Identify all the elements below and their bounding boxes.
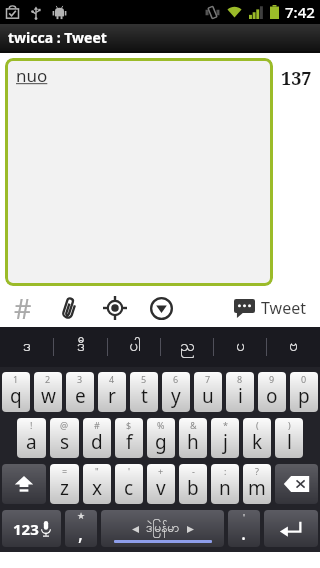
button[interactable]: 6 [162,372,190,412]
button[interactable]: $ [115,418,143,458]
button[interactable]: ! [17,418,46,458]
staticText: d [91,429,103,455]
button[interactable]: = [50,464,79,504]
staticText: f [126,429,133,455]
button[interactable]: 2 [34,372,62,412]
button[interactable]: " [83,464,111,504]
staticText: ! [30,419,33,431]
staticText: 0 [301,373,307,385]
staticText: i [238,383,243,409]
button[interactable]: * [211,418,239,458]
staticText: Tweet [261,297,306,319]
staticText: ' [128,465,131,477]
button[interactable]: nuo [5,58,273,286]
button[interactable]: Numbers and voice input [2,510,61,547]
staticText: " [95,465,99,477]
button[interactable]: More options [138,289,184,327]
button[interactable]: + [147,464,175,504]
staticText: 1 [13,373,19,385]
button[interactable]: & [179,418,207,458]
button[interactable]: Shift [2,464,46,504]
staticText: o [266,383,278,409]
staticText: nuo [16,64,48,87]
staticText: 123 [13,519,39,539]
staticText: twicca : Tweet [8,28,107,47]
button[interactable]: : [211,464,239,504]
button[interactable]: ဒီ [54,327,108,367]
staticText: z [60,475,69,501]
staticText: 2 [45,373,51,385]
staticText: % [157,419,165,431]
button[interactable]: ★ [65,510,97,547]
staticText: 8 [237,373,243,385]
staticText: ? [255,465,259,477]
button[interactable]: Delete [275,464,318,504]
staticText: ) [288,419,291,431]
staticText: w [41,383,56,409]
staticText: x [92,475,103,501]
button[interactable]: 9 [258,372,286,412]
staticText: ပ [236,336,245,358]
staticText: v [156,475,166,501]
button[interactable]: Attach file [46,289,92,327]
staticText: 7:42 [285,2,315,22]
button[interactable]: @ [50,418,79,458]
staticText: l [287,429,292,455]
staticText: ( [256,419,259,431]
staticText: c [124,475,134,501]
button[interactable]: ဒ [0,327,54,367]
staticText: + [158,465,164,477]
button[interactable]: 3 [66,372,94,412]
button[interactable]: ပ [214,327,267,367]
staticText: s [60,429,70,455]
staticText: m [248,475,266,501]
staticText: # [94,419,100,431]
button[interactable]: ? [243,464,271,504]
button[interactable]: ) [275,418,303,458]
button[interactable]: Space [101,510,224,547]
staticText: 6 [173,373,179,385]
staticText: n [219,475,231,501]
staticText: k [252,429,263,455]
staticText: 7 [205,373,211,385]
staticText: e [75,383,86,409]
button[interactable]: ည [161,327,214,367]
button[interactable]: ( [243,418,271,458]
button[interactable]: 7 [194,372,222,412]
button[interactable]: ' [228,510,260,547]
staticText: = [62,465,68,477]
staticText: 9 [269,373,275,385]
staticText: ဒီ [77,336,85,358]
staticText: 137 [281,66,312,91]
staticText: r [108,383,116,409]
staticText: p [298,383,310,409]
button[interactable]: # [83,418,111,458]
button[interactable]: 0 [290,372,318,412]
button[interactable]: Enter [264,510,318,547]
button[interactable]: 4 [98,372,126,412]
staticText: a [26,429,37,455]
button[interactable]: 1 [2,372,30,412]
staticText: $ [126,419,132,431]
button[interactable]: 5 [130,372,158,412]
button[interactable]: Tweet [234,297,306,319]
staticText: ★ [77,511,86,521]
button[interactable]: Location [92,289,138,327]
button[interactable]: ပါ [108,327,161,367]
staticText: 3 [77,373,83,385]
button[interactable]: ' [115,464,143,504]
staticText: j [223,429,228,455]
button[interactable]: ဗ [267,327,320,367]
button[interactable]: 8 [226,372,254,412]
staticText: ဗ [289,336,298,358]
button[interactable]: - [179,464,207,504]
staticText: . [241,520,247,546]
staticText: h [187,429,199,455]
staticText: : [224,465,227,477]
staticText: ' [243,511,246,523]
button[interactable]: Hashtag [0,289,46,327]
staticText: g [155,429,167,455]
staticText: ည [180,336,195,358]
button[interactable]: % [147,418,175,458]
staticText: ဒ [23,336,31,358]
